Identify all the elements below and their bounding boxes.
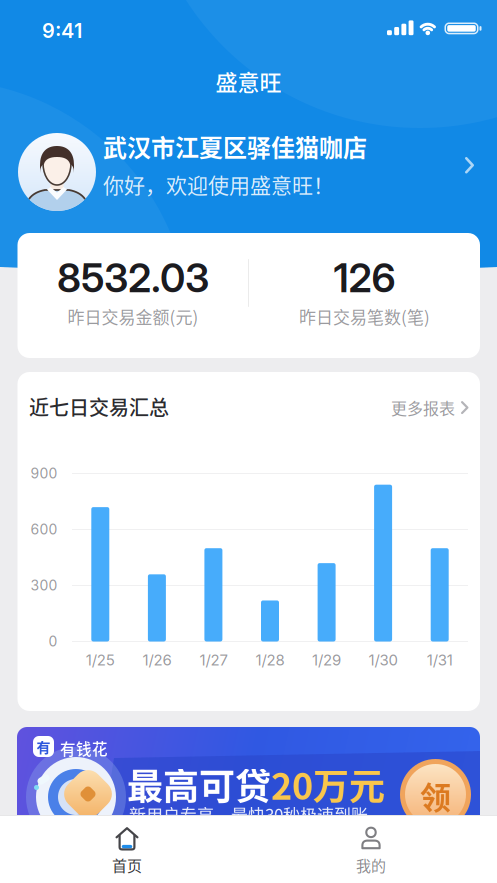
staticText: 首页 — [112, 854, 142, 876]
staticText: 1/28 — [255, 651, 284, 669]
staticText: 1/25 — [86, 651, 115, 669]
staticText: 新用户专享，最快30秒极速到账 — [129, 802, 368, 827]
staticText: 盛意旺 — [215, 65, 281, 97]
button[interactable]: 有 — [17, 727, 480, 827]
button[interactable]: 8532.03 — [17, 233, 248, 358]
staticText: 9:41 — [42, 18, 82, 43]
staticText: 900 — [30, 465, 57, 482]
staticText: 0 — [48, 633, 57, 650]
staticText: 武汉市江夏区驿佳猫咖店 — [103, 129, 367, 164]
button[interactable]: 武汉市江夏区驿佳猫咖店 — [0, 127, 497, 223]
button[interactable]: 更多报表 — [391, 396, 468, 419]
staticText: 1/30 — [369, 651, 398, 669]
button[interactable]: 首页 — [67, 826, 187, 876]
staticText: 20万元 — [271, 758, 385, 810]
staticText: 1/31 — [427, 651, 453, 669]
staticText: 300 — [30, 577, 57, 594]
staticText: 你好，欢迎使用盛意旺！ — [103, 169, 334, 199]
staticText: 更多报表 — [391, 396, 455, 419]
staticText: 最高可贷 — [127, 758, 271, 810]
staticText: 1/27 — [199, 651, 227, 669]
staticText: 126 — [333, 254, 395, 302]
staticText: 600 — [30, 521, 57, 538]
staticText: 有 — [36, 736, 50, 757]
staticText: 8532.03 — [57, 254, 209, 302]
staticText: 我的 — [356, 854, 386, 876]
button[interactable]: 126 — [249, 233, 480, 358]
staticText: 昨日交易笔数(笔) — [299, 304, 430, 329]
staticText: 昨日交易金额(元) — [67, 304, 198, 329]
staticText: 有钱花 — [60, 737, 108, 759]
staticText: 1/29 — [312, 651, 341, 669]
staticText: 领 — [420, 773, 451, 818]
staticText: 近七日交易汇总 — [29, 392, 169, 421]
staticText: 1/26 — [142, 651, 171, 669]
button[interactable]: 我的 — [311, 826, 431, 876]
